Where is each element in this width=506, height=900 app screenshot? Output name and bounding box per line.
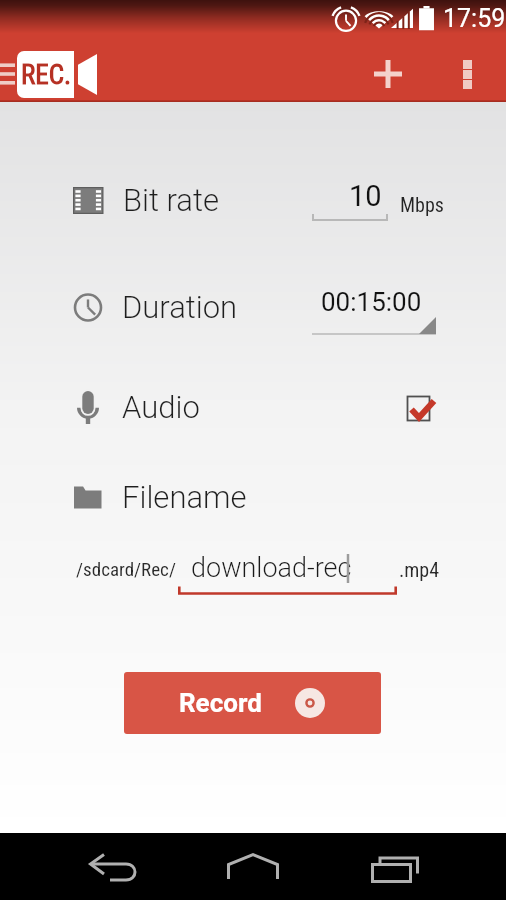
button[interactable]: Recent apps [362, 840, 428, 886]
staticText: Bit rate [123, 182, 219, 218]
staticText: download-rec [191, 552, 352, 584]
button[interactable]: Back [78, 844, 146, 892]
button[interactable]: Filename [0, 469, 506, 525]
staticText: .mp4 [399, 558, 440, 581]
button[interactable]: Navigation menu [0, 50, 30, 98]
button[interactable]: 00:15:00 [312, 283, 436, 335]
button[interactable]: Bit rate [0, 172, 506, 228]
button[interactable]: Audio enabled [403, 390, 437, 424]
staticText: REC. [21, 59, 72, 91]
button[interactable]: Home [218, 843, 288, 889]
button[interactable]: Audio [0, 379, 506, 435]
button[interactable]: Duration [0, 279, 506, 335]
staticText: /sdcard/Rec/ [76, 558, 176, 580]
button[interactable]: 10 [312, 176, 388, 224]
staticText: 00:15:00 [321, 287, 422, 317]
button[interactable]: Add [364, 50, 412, 98]
staticText: Duration [122, 289, 238, 325]
staticText: Audio [122, 389, 200, 425]
button[interactable]: download-rec [178, 551, 397, 595]
staticText: Record [179, 688, 262, 718]
staticText: Filename [122, 479, 247, 515]
staticText: Mbps [400, 193, 444, 216]
staticText: 17:59 [443, 4, 506, 33]
button[interactable]: Record [124, 672, 381, 734]
button[interactable]: More options [443, 50, 491, 98]
staticText: 10 [349, 179, 382, 213]
